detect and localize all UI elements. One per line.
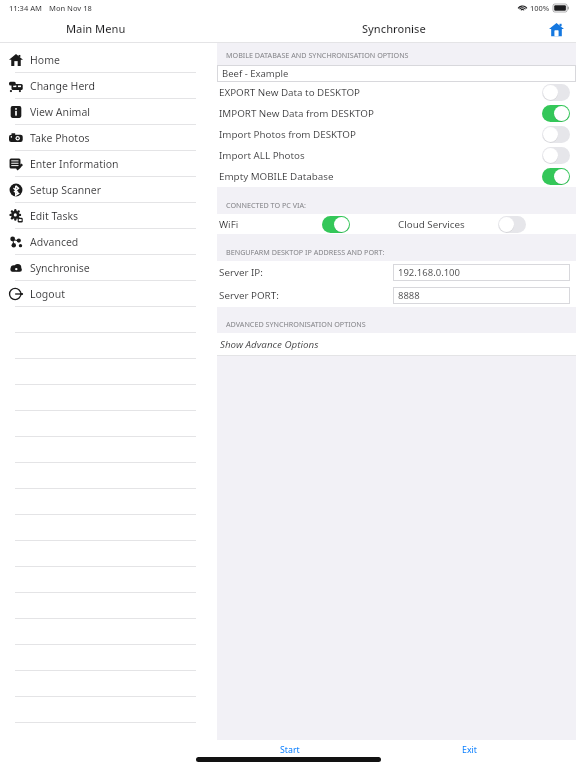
button[interactable]: Setup Scanner bbox=[0, 177, 210, 202]
button[interactable]: Synchronise bbox=[0, 255, 210, 280]
button[interactable]: Toggle on bbox=[542, 105, 570, 122]
staticText: Exit bbox=[462, 744, 477, 756]
button[interactable]: Toggle off bbox=[542, 147, 570, 164]
staticText: Import ALL Photos bbox=[219, 149, 305, 162]
staticText: WiFi bbox=[219, 218, 239, 231]
staticText: Server PORT: bbox=[219, 289, 279, 302]
button[interactable]: Import ALL Photos bbox=[217, 145, 576, 166]
staticText: 192.168.0.100 bbox=[398, 266, 460, 279]
button[interactable]: EXPORT New Data to DESKTOP bbox=[217, 82, 576, 103]
staticText: Synchronise bbox=[362, 21, 426, 36]
staticText: 100% bbox=[530, 3, 550, 13]
staticText: MOBILE DATABASE AND SYNCHRONISATION OPTI… bbox=[226, 50, 409, 60]
button[interactable]: Enter Information bbox=[0, 151, 210, 176]
button[interactable]: Home bbox=[0, 47, 210, 72]
button[interactable]: Import Photos from DESKTOP bbox=[217, 124, 576, 145]
button[interactable]: 192.168.0.100 bbox=[393, 264, 570, 281]
button[interactable]: Cloud Services bbox=[398, 216, 526, 233]
button[interactable]: Toggle on bbox=[322, 216, 350, 233]
button[interactable]: Home bbox=[545, 18, 567, 40]
button[interactable]: Empty MOBILE Database bbox=[217, 166, 576, 187]
button[interactable]: Exit bbox=[452, 740, 487, 760]
staticText: ADVANCED SYNCHRONISATION OPTIONS bbox=[226, 319, 366, 329]
staticText: Logout bbox=[30, 287, 65, 301]
staticText: EXPORT New Data to DESKTOP bbox=[219, 86, 360, 99]
staticText: Setup Scanner bbox=[30, 183, 102, 197]
button[interactable]: Advanced bbox=[0, 229, 210, 254]
staticText: 11:34 AM bbox=[9, 3, 42, 13]
staticText: CONNECTED TO PC VIA: bbox=[226, 200, 306, 210]
staticText: Advanced bbox=[30, 235, 79, 249]
button[interactable]: IMPORT New Data from DESKTOP bbox=[217, 103, 576, 124]
staticText: 8888 bbox=[398, 289, 420, 302]
staticText: Edit Tasks bbox=[30, 209, 79, 223]
button[interactable]: Edit Tasks bbox=[0, 203, 210, 228]
button[interactable]: View Animal bbox=[0, 99, 210, 124]
button[interactable]: Show Advance Options bbox=[217, 333, 576, 355]
staticText: Start bbox=[280, 744, 300, 756]
button[interactable]: Start bbox=[270, 740, 310, 760]
button[interactable]: Toggle off bbox=[542, 126, 570, 143]
staticText: Change Herd bbox=[30, 79, 95, 93]
button[interactable]: Toggle off bbox=[498, 216, 526, 233]
button[interactable]: WiFi bbox=[219, 216, 350, 233]
staticText: View Animal bbox=[30, 105, 91, 119]
staticText: Import Photos from DESKTOP bbox=[219, 128, 356, 141]
staticText: Beef - Example bbox=[222, 67, 289, 80]
staticText: BENGUFARM DESKTOP IP ADDRESS AND PORT: bbox=[226, 247, 385, 257]
button[interactable]: Change Herd bbox=[0, 73, 210, 98]
button[interactable]: Take Photos bbox=[0, 125, 210, 150]
button[interactable]: Logout bbox=[0, 281, 210, 306]
button[interactable]: Main Menu bbox=[60, 18, 132, 39]
button[interactable]: Toggle on bbox=[542, 168, 570, 185]
staticText: Empty MOBILE Database bbox=[219, 170, 334, 183]
staticText: Cloud Services bbox=[398, 218, 465, 231]
staticText: Synchronise bbox=[30, 261, 90, 275]
button[interactable]: Toggle off bbox=[542, 84, 570, 101]
staticText: Home bbox=[30, 53, 60, 67]
staticText: Server IP: bbox=[219, 266, 263, 279]
staticText: Show Advance Options bbox=[220, 338, 319, 351]
button[interactable]: 8888 bbox=[393, 287, 570, 304]
staticText: IMPORT New Data from DESKTOP bbox=[219, 107, 374, 120]
staticText: Main Menu bbox=[66, 21, 126, 36]
staticText: Mon Nov 18 bbox=[49, 3, 92, 13]
staticText: Enter Information bbox=[30, 157, 119, 171]
button[interactable]: Beef - Example bbox=[217, 65, 576, 82]
staticText: Take Photos bbox=[30, 131, 90, 145]
